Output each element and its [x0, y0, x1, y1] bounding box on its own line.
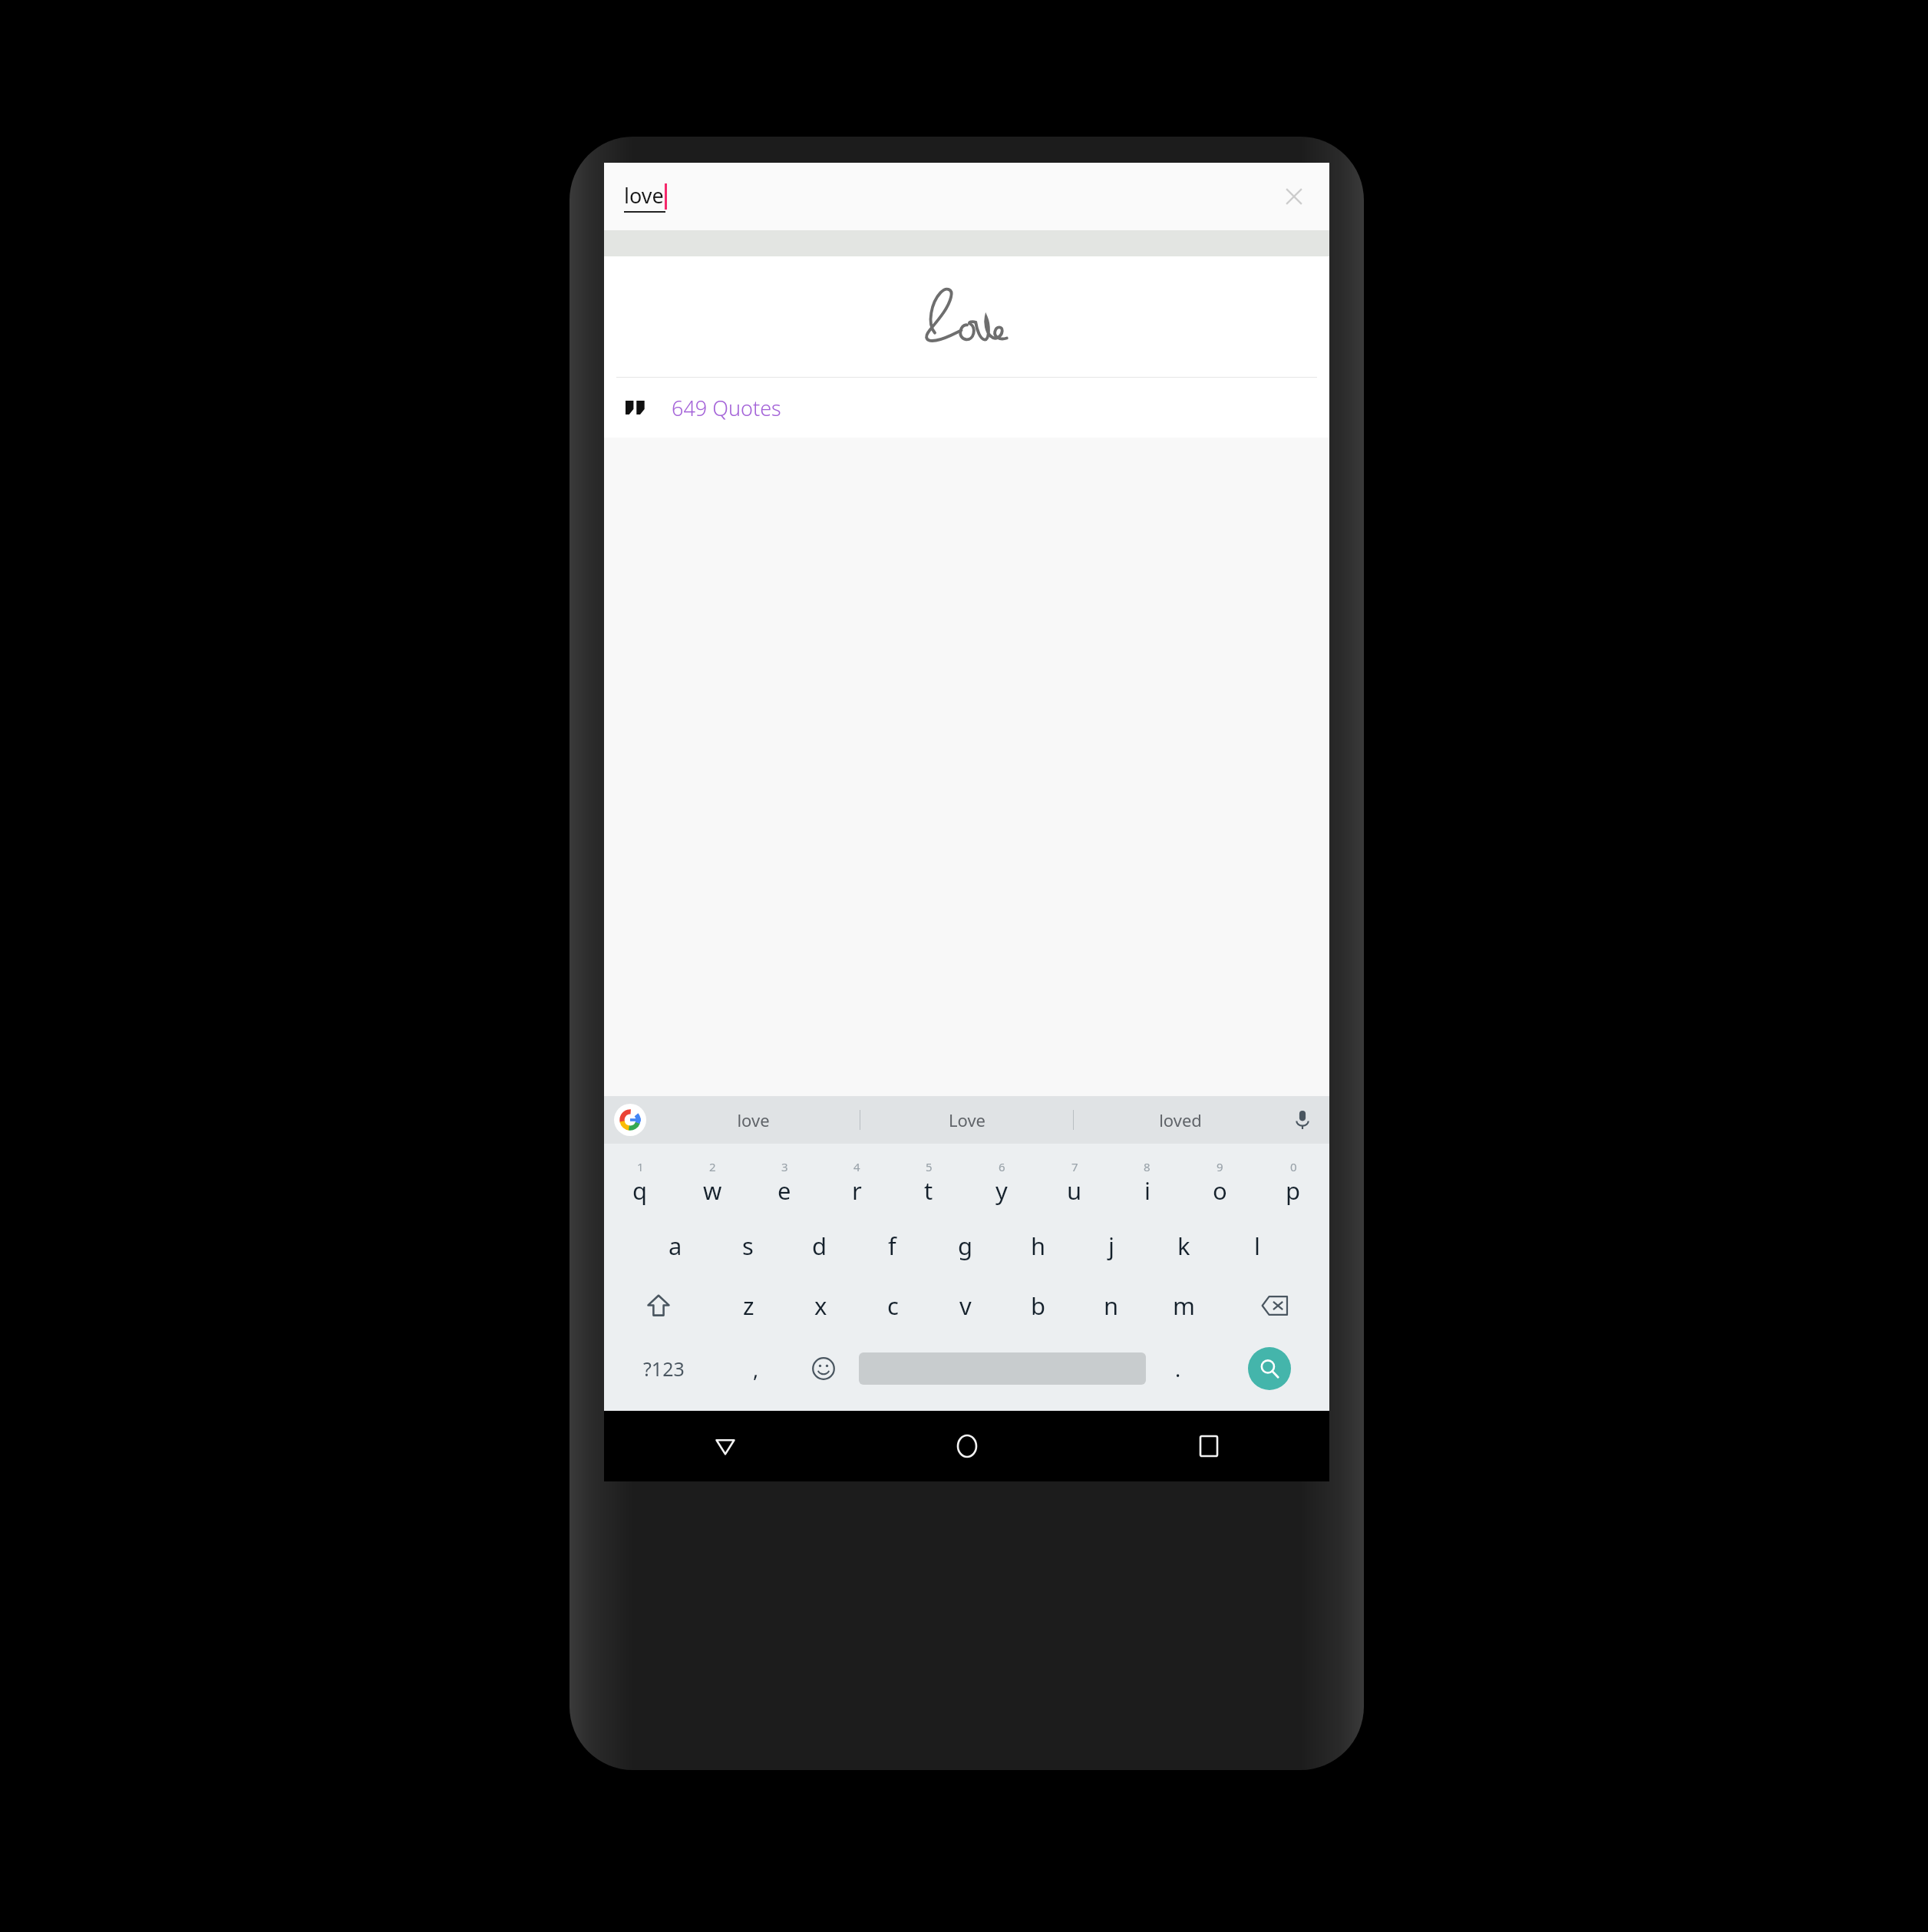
staticText: 5 — [926, 1159, 933, 1174]
button[interactable]: Shift — [604, 1276, 712, 1336]
staticText: r — [852, 1174, 862, 1207]
button[interactable]: z — [712, 1276, 784, 1336]
staticText: z — [743, 1290, 754, 1322]
button[interactable]: s — [711, 1216, 784, 1276]
staticText: x — [814, 1290, 827, 1322]
button[interactable]: Love — [860, 1096, 1073, 1144]
staticText: 7 — [1071, 1159, 1078, 1174]
button[interactable]: j — [1075, 1216, 1147, 1276]
button[interactable]: love — [647, 1096, 860, 1144]
button[interactable]: loved — [1074, 1096, 1286, 1144]
button[interactable]: 5 — [893, 1150, 965, 1216]
button[interactable]: m — [1147, 1276, 1220, 1336]
staticText: 0 — [1290, 1159, 1297, 1174]
staticText: loved — [1159, 1108, 1202, 1131]
staticText: h — [1031, 1230, 1046, 1262]
button[interactable]: Home — [846, 1411, 1088, 1481]
staticText: 8 — [1144, 1159, 1151, 1174]
button[interactable]: n — [1075, 1276, 1147, 1336]
staticText: 6 — [999, 1159, 1005, 1174]
button[interactable]: Space — [859, 1352, 1146, 1385]
button[interactable]: Search — [1210, 1336, 1329, 1402]
staticText: 1 — [637, 1159, 644, 1174]
button[interactable]: ?123 — [604, 1336, 724, 1402]
button[interactable]: v — [929, 1276, 1002, 1336]
button[interactable]: 7 — [1038, 1150, 1111, 1216]
button[interactable]: Voice input — [1286, 1104, 1319, 1136]
button[interactable]: c — [857, 1276, 929, 1336]
staticText: d — [812, 1230, 827, 1262]
button[interactable]: Emoji — [787, 1336, 859, 1402]
staticText: y — [995, 1174, 1008, 1207]
staticText: a — [669, 1230, 682, 1262]
button[interactable]: love — [604, 163, 1329, 230]
button[interactable]: 6 — [965, 1150, 1038, 1216]
button[interactable]: Clear search — [1276, 178, 1312, 215]
staticText: v — [959, 1290, 972, 1322]
staticText: f — [888, 1230, 896, 1262]
button[interactable]: b — [1002, 1276, 1075, 1336]
staticText: w — [703, 1174, 722, 1207]
staticText: e — [777, 1174, 791, 1207]
button[interactable]: 3 — [748, 1150, 820, 1216]
staticText: q — [632, 1174, 648, 1207]
staticText: p — [1286, 1174, 1301, 1207]
button[interactable]: Recent apps — [1088, 1411, 1329, 1481]
staticText: b — [1031, 1290, 1046, 1322]
staticText: t — [924, 1174, 933, 1207]
button[interactable]: h — [1002, 1216, 1075, 1276]
staticText: s — [742, 1230, 754, 1262]
button[interactable]: 649 Quotes — [604, 378, 1329, 438]
staticText: love — [624, 181, 664, 210]
staticText: 3 — [781, 1159, 788, 1174]
button[interactable]: Backspace — [1220, 1276, 1329, 1336]
button[interactable]: l — [1220, 1216, 1293, 1276]
button[interactable]: k — [1147, 1216, 1220, 1276]
staticText: 649 Quotes — [672, 394, 781, 422]
staticText: n — [1104, 1290, 1119, 1322]
button[interactable]: 8 — [1111, 1150, 1184, 1216]
button[interactable]: Google search — [613, 1103, 647, 1137]
button[interactable]: g — [929, 1216, 1002, 1276]
staticText: ?123 — [643, 1356, 685, 1382]
staticText: g — [958, 1230, 973, 1262]
staticText: 9 — [1217, 1159, 1223, 1174]
staticText: o — [1213, 1174, 1227, 1207]
staticText: 2 — [709, 1159, 716, 1174]
staticText: love — [737, 1108, 770, 1131]
button[interactable]: f — [856, 1216, 929, 1276]
button[interactable]: 2 — [676, 1150, 748, 1216]
button[interactable]: d — [784, 1216, 856, 1276]
staticText: j — [1108, 1230, 1114, 1262]
staticText: . — [1175, 1355, 1181, 1383]
button[interactable]: 9 — [1184, 1150, 1256, 1216]
staticText: l — [1254, 1230, 1260, 1262]
staticText: c — [887, 1290, 899, 1322]
staticText: m — [1173, 1290, 1195, 1322]
staticText: 4 — [853, 1159, 860, 1174]
button[interactable]: . — [1146, 1336, 1210, 1402]
staticText: k — [1177, 1230, 1190, 1262]
button[interactable]: , — [724, 1336, 787, 1402]
button[interactable]: 0 — [1256, 1150, 1329, 1216]
staticText: u — [1067, 1174, 1082, 1207]
staticText: , — [753, 1355, 759, 1383]
button[interactable]: 1 — [604, 1150, 676, 1216]
button[interactable]: 4 — [820, 1150, 893, 1216]
button[interactable]: Back — [604, 1411, 846, 1481]
staticText: Love — [949, 1108, 985, 1131]
button[interactable]: a — [639, 1216, 711, 1276]
button[interactable]: x — [784, 1276, 857, 1336]
staticText: i — [1144, 1174, 1151, 1207]
